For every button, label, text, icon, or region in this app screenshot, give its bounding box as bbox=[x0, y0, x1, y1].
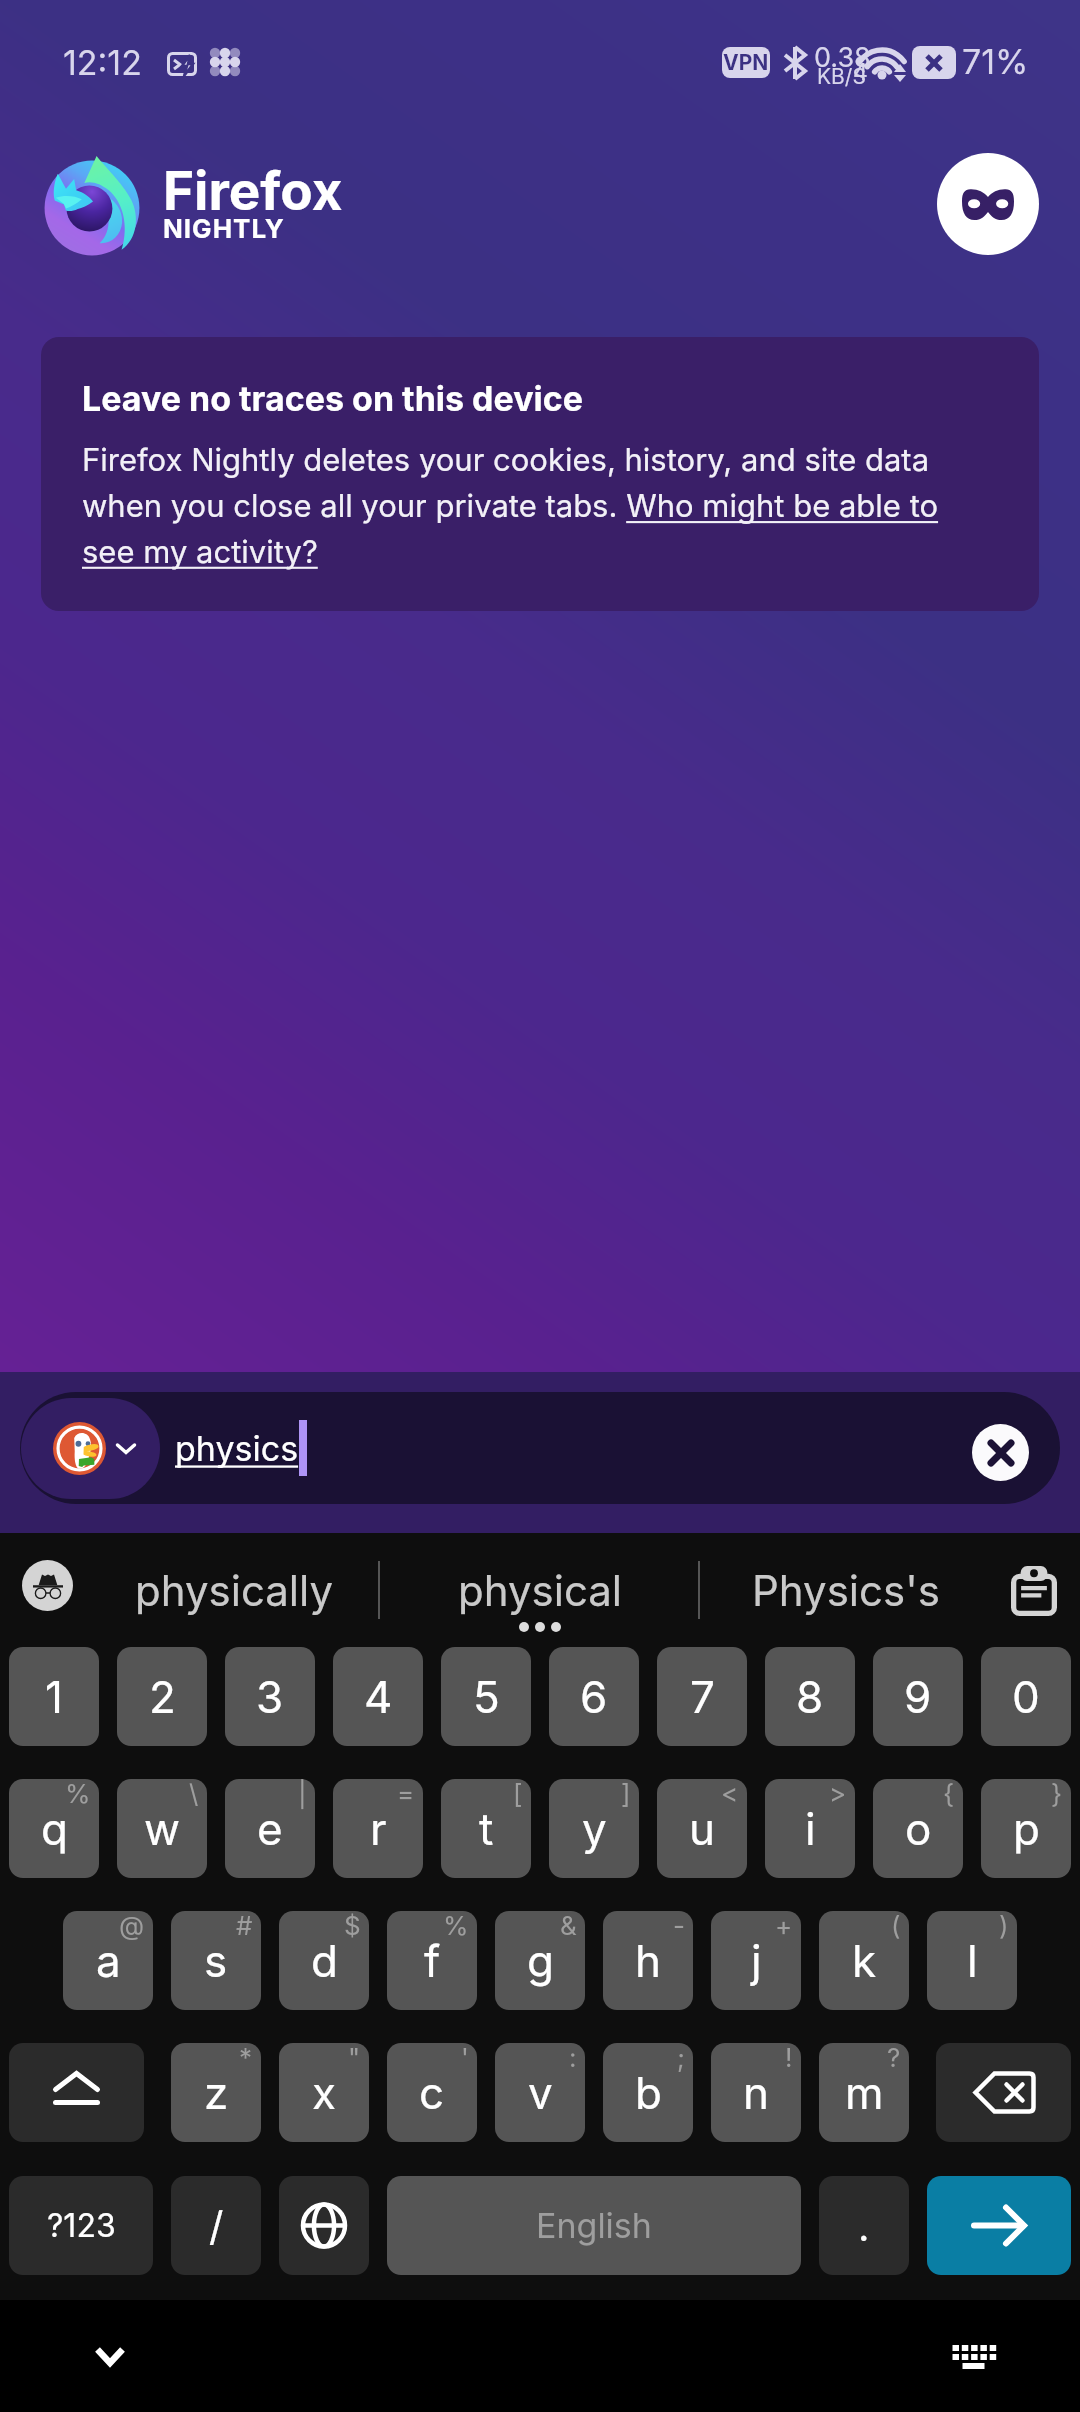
button[interactable]: j bbox=[711, 1911, 801, 2010]
staticText: VPN bbox=[723, 50, 769, 75]
button[interactable]: b bbox=[603, 2043, 693, 2142]
button[interactable]: Clear bbox=[972, 1424, 1029, 1481]
button[interactable] bbox=[936, 2043, 1071, 2142]
button[interactable]: e bbox=[225, 1779, 315, 1878]
staticText: y bbox=[582, 1802, 607, 1855]
button[interactable]: 1 bbox=[9, 1647, 99, 1746]
button[interactable]: c bbox=[387, 2043, 477, 2142]
staticText: v bbox=[528, 2066, 553, 2119]
staticText: physics bbox=[175, 1428, 299, 1469]
button[interactable]: s bbox=[171, 1911, 261, 2010]
button[interactable]: / bbox=[171, 2176, 261, 2275]
button[interactable]: Incognito bbox=[22, 1560, 73, 1611]
staticText: ? bbox=[887, 2043, 901, 2073]
button[interactable]: 2 bbox=[117, 1647, 207, 1746]
staticText: " bbox=[348, 2043, 361, 2073]
button[interactable]: . bbox=[819, 2176, 909, 2275]
staticText: n bbox=[743, 2066, 769, 2119]
staticText: c bbox=[419, 2066, 445, 2119]
staticText: r bbox=[370, 1802, 387, 1855]
button[interactable]: physical bbox=[390, 1533, 690, 1647]
button[interactable]: q bbox=[9, 1779, 99, 1878]
staticText: h bbox=[635, 1934, 662, 1987]
staticText: > bbox=[829, 1779, 847, 1809]
button[interactable]: 9 bbox=[873, 1647, 963, 1746]
button[interactable]: Physics's bbox=[696, 1533, 996, 1647]
staticText: w bbox=[144, 1802, 181, 1855]
staticText: Leave no traces on this device bbox=[82, 378, 584, 419]
staticText: ! bbox=[785, 2043, 793, 2073]
staticText: 8 bbox=[796, 1670, 824, 1723]
staticText: ( bbox=[891, 1911, 901, 1941]
staticText: 4 bbox=[853, 58, 868, 86]
staticText: x bbox=[312, 2066, 337, 2119]
staticText: d bbox=[311, 1934, 338, 1987]
button[interactable] bbox=[9, 2043, 144, 2142]
button[interactable]: t bbox=[441, 1779, 531, 1878]
staticText: NIGHTLY bbox=[163, 213, 285, 244]
button[interactable]: Search engine bbox=[21, 1398, 160, 1499]
button[interactable]: y bbox=[549, 1779, 639, 1878]
staticText: k bbox=[852, 1934, 877, 1987]
button[interactable]: 3 bbox=[225, 1647, 315, 1746]
button[interactable]: l bbox=[927, 1911, 1017, 2010]
button[interactable]: Private browsing bbox=[937, 153, 1039, 255]
button[interactable]: f bbox=[387, 1911, 477, 2010]
button[interactable]: Clipboard bbox=[1006, 1556, 1062, 1626]
button[interactable]: z bbox=[171, 2043, 261, 2142]
staticText: 6 bbox=[580, 1670, 608, 1723]
staticText: % bbox=[65, 1779, 91, 1809]
staticText: i bbox=[805, 1802, 816, 1855]
button[interactable]: Search engine bbox=[20, 1392, 1060, 1504]
button[interactable]: p bbox=[981, 1779, 1071, 1878]
button[interactable]: 4 bbox=[333, 1647, 423, 1746]
button[interactable]: ?123 bbox=[9, 2176, 153, 2275]
staticText: b bbox=[635, 2066, 662, 2119]
button[interactable]: n bbox=[711, 2043, 801, 2142]
button[interactable]: h bbox=[603, 1911, 693, 2010]
staticText: e bbox=[257, 1802, 283, 1855]
button[interactable]: d bbox=[279, 1911, 369, 2010]
button[interactable]: k bbox=[819, 1911, 909, 2010]
staticText: o bbox=[905, 1802, 932, 1855]
button[interactable]: 0 bbox=[981, 1647, 1071, 1746]
staticText: ?123 bbox=[47, 2206, 116, 2245]
staticText: ; bbox=[677, 2043, 685, 2073]
button[interactable]: u bbox=[657, 1779, 747, 1878]
button[interactable]: g bbox=[495, 1911, 585, 2010]
staticText: j bbox=[751, 1934, 762, 1987]
staticText: : bbox=[569, 2043, 577, 2073]
staticText: Firefox Nightly deletes your cookies, hi… bbox=[82, 441, 968, 570]
staticText: 9 bbox=[904, 1670, 932, 1723]
staticText: Firefox bbox=[163, 159, 343, 223]
button[interactable]: i bbox=[765, 1779, 855, 1878]
button[interactable]: r bbox=[333, 1779, 423, 1878]
staticText: * bbox=[239, 2043, 253, 2073]
button[interactable]: 7 bbox=[657, 1647, 747, 1746]
button[interactable]: physically bbox=[84, 1533, 384, 1647]
button[interactable]: x bbox=[279, 2043, 369, 2142]
button[interactable]: 5 bbox=[441, 1647, 531, 1746]
button[interactable]: v bbox=[495, 2043, 585, 2142]
staticText: = bbox=[397, 1779, 415, 1809]
staticText: English bbox=[536, 2205, 652, 2246]
button[interactable]: 8 bbox=[765, 1647, 855, 1746]
button[interactable]: w bbox=[117, 1779, 207, 1878]
staticText: 71% bbox=[962, 41, 1029, 82]
button[interactable]: m bbox=[819, 2043, 909, 2142]
staticText: ] bbox=[621, 1779, 631, 1809]
button[interactable]: 6 bbox=[549, 1647, 639, 1746]
button[interactable]: Hide keyboard bbox=[70, 2322, 150, 2392]
button[interactable]: Switch keyboard bbox=[932, 2322, 1012, 2392]
staticText: 1 bbox=[45, 1670, 63, 1723]
button[interactable] bbox=[927, 2176, 1071, 2275]
staticText: f bbox=[424, 1934, 441, 1987]
staticText: q bbox=[41, 1802, 68, 1855]
button[interactable]: a bbox=[63, 1911, 153, 2010]
staticText: + bbox=[775, 1911, 793, 1941]
staticText: % bbox=[443, 1911, 469, 1941]
button[interactable]: English bbox=[387, 2176, 801, 2275]
staticText: $ bbox=[344, 1911, 361, 1941]
button[interactable] bbox=[279, 2176, 369, 2275]
button[interactable]: o bbox=[873, 1779, 963, 1878]
